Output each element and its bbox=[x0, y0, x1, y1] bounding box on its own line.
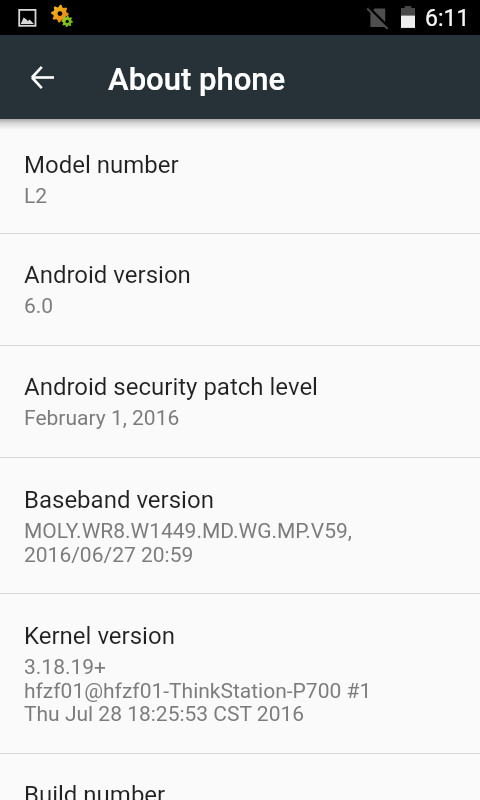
staticText: Android version bbox=[24, 261, 191, 289]
button[interactable]: Android version bbox=[0, 234, 480, 345]
button[interactable]: Baseband version bbox=[0, 458, 480, 593]
staticText: 6:11 bbox=[425, 5, 470, 32]
staticText: Model number bbox=[24, 151, 179, 179]
staticText: 3.18.19+ hfzf01@hfzf01-ThinkStation-P700… bbox=[24, 655, 372, 726]
staticText: About phone bbox=[108, 61, 286, 97]
staticText: 6.0 bbox=[24, 294, 54, 319]
staticText: Kernel version bbox=[24, 622, 175, 650]
button[interactable]: Model number bbox=[0, 126, 480, 233]
staticText: Baseband version bbox=[24, 486, 214, 514]
button[interactable]: Build number bbox=[0, 754, 480, 800]
staticText: Build number bbox=[24, 781, 166, 800]
button[interactable]: Kernel version bbox=[0, 594, 480, 753]
staticText: MOLY.WR8.W1449.MD.WG.MP.V59, 2016/06/27 … bbox=[24, 519, 352, 567]
button[interactable]: Navigate up bbox=[14, 49, 70, 105]
staticText: February 1, 2016 bbox=[24, 406, 180, 431]
button[interactable]: Android security patch level bbox=[0, 346, 480, 457]
staticText: L2 bbox=[24, 184, 48, 209]
staticText: Android security patch level bbox=[24, 373, 318, 401]
